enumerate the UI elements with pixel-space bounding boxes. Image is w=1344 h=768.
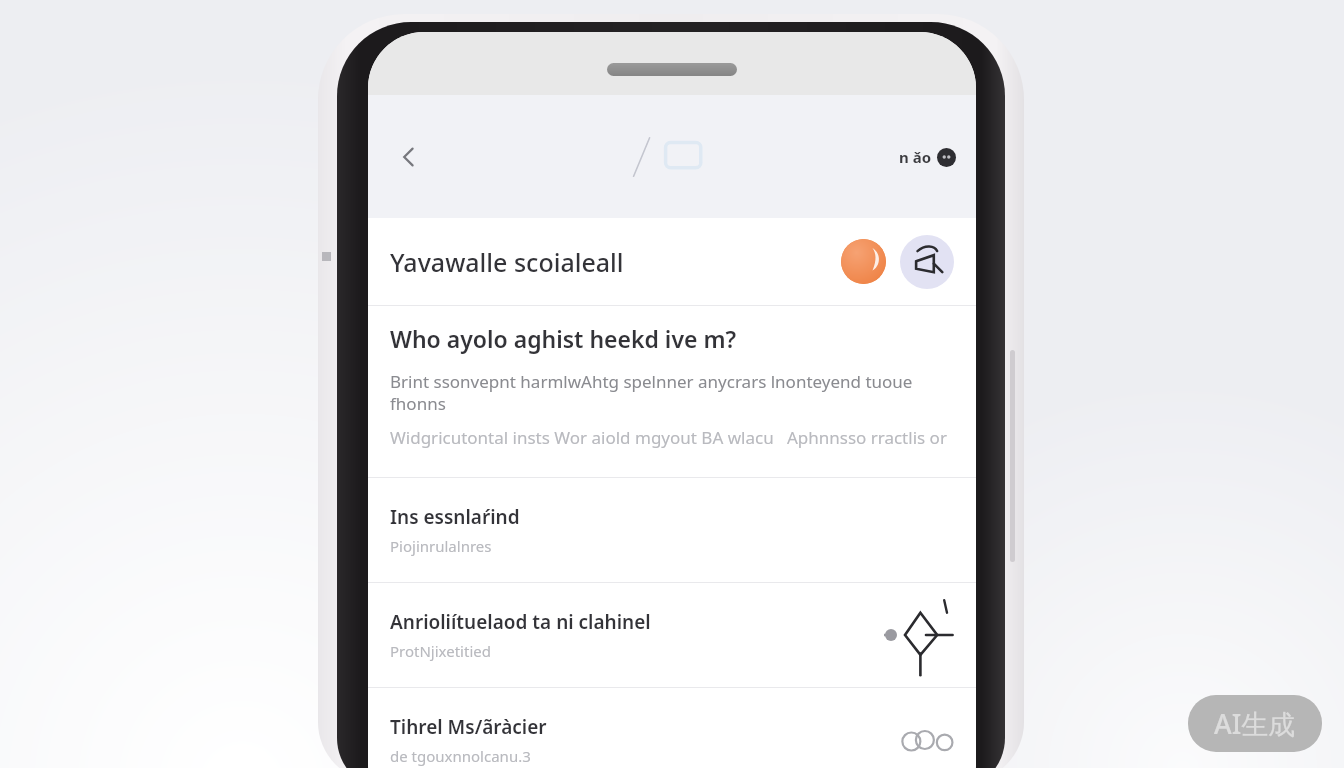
button[interactable]: Ins essnlaŕind — [368, 478, 976, 582]
staticText: Brint ssonvepnt harmlwAhtg spelnner anyc… — [390, 370, 954, 415]
staticText: Ins essnlaŕind — [390, 504, 520, 530]
staticText: de tgouxnnolcanu.3 — [390, 746, 531, 766]
staticText: Piojinrulalnres — [390, 536, 492, 556]
staticText: ProtNjixetitied — [390, 641, 491, 661]
staticText: Widgricutontal insts Wor aiold mgyout BA… — [390, 426, 947, 449]
staticText: n ǎo — [899, 147, 932, 167]
staticText: Anrioliítuelaod ta ni clahinel — [390, 609, 651, 635]
staticText: Tihrel Ms/ãràcier — [390, 714, 547, 740]
staticText: Yavawalle scoialeall — [390, 245, 624, 279]
staticText: Who ayolo aghist heekd ive m? — [390, 323, 737, 354]
staticText: AI生成 — [1214, 705, 1296, 742]
button[interactable]: Tihrel Ms/ãràcier — [368, 688, 976, 768]
button[interactable]: Yavawalle scoialeall — [368, 218, 976, 305]
button[interactable]: Profile — [841, 239, 886, 284]
button[interactable]: Back — [386, 134, 432, 180]
button[interactable]: Announcement — [900, 235, 954, 289]
button[interactable]: Anrioliítuelaod ta ni clahinel — [368, 583, 976, 687]
